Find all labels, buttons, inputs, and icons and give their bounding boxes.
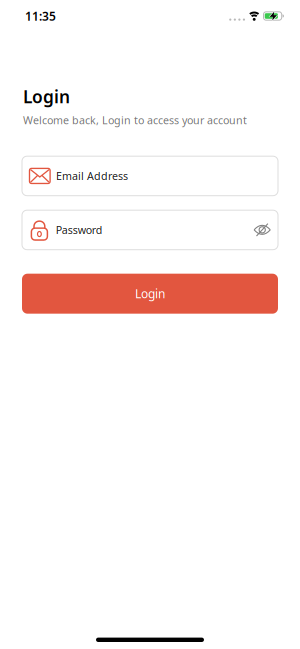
staticText: Login [135,286,165,302]
staticText: Password [56,223,103,237]
staticText: 11:35 [25,8,56,24]
button[interactable]: Login [22,274,278,314]
staticText: Welcome back, Login to access your accou… [23,113,247,127]
staticText: Login [23,85,70,108]
button[interactable]: Password [22,210,278,250]
button[interactable]: Show password [254,222,271,237]
staticText: Email Address [56,169,128,183]
button[interactable]: Email Address [22,156,278,196]
